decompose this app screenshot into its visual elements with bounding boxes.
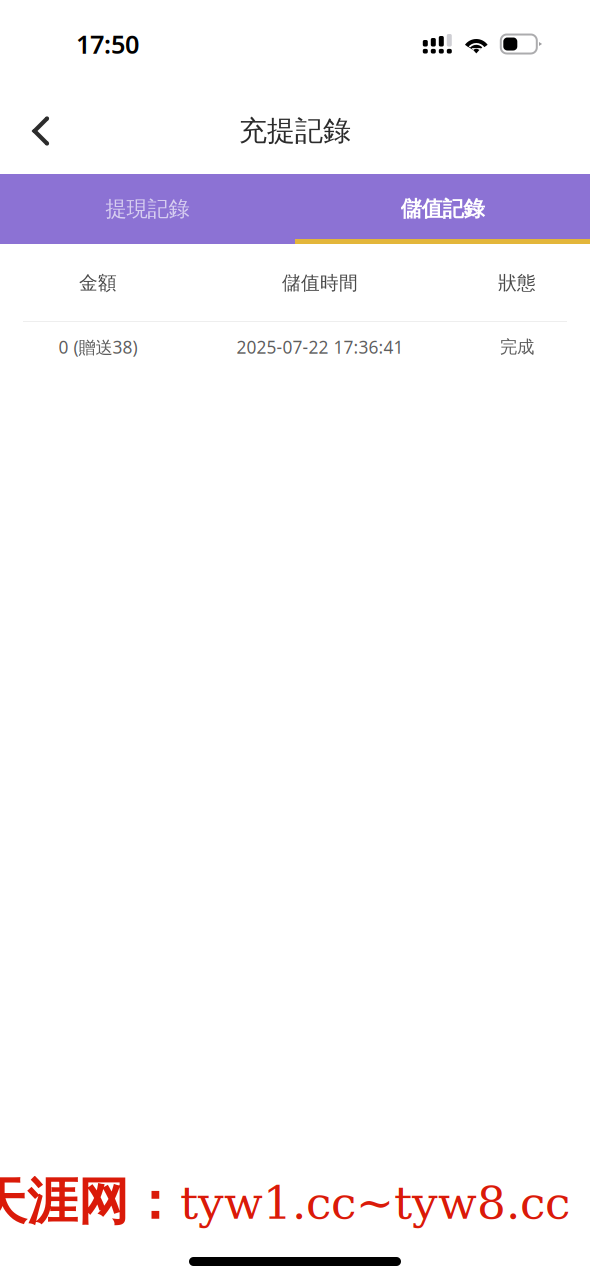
staticText: 儲值記錄: [400, 196, 484, 222]
button[interactable]: 儲值記錄: [295, 174, 590, 244]
staticText: 狀態: [498, 271, 536, 294]
staticText: 儲值時間: [282, 271, 358, 294]
staticText: 金額: [79, 271, 117, 294]
button[interactable]: 提現記錄: [0, 174, 295, 244]
staticText: tyw1.cc~tyw8.cc: [180, 1177, 570, 1230]
button[interactable]: Back: [12, 102, 70, 160]
staticText: 天涯网：: [0, 1171, 180, 1233]
staticText: 0 (贈送38): [58, 335, 137, 358]
staticText: 提現記錄: [105, 196, 189, 222]
staticText: 2025-07-22 17:36:41: [236, 335, 403, 358]
staticText: 完成: [500, 336, 534, 358]
staticText: 17:50: [76, 27, 139, 61]
staticText: 充提記錄: [239, 114, 351, 148]
